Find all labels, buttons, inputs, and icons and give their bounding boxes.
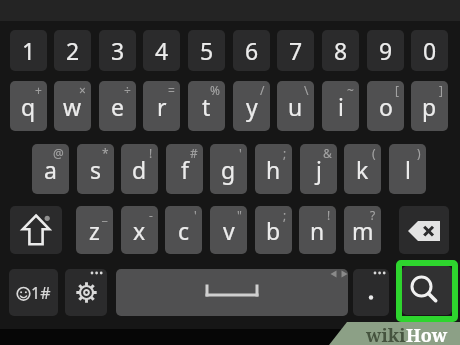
staticText: n	[310, 215, 325, 246]
staticText: /	[260, 82, 265, 98]
button[interactable]: o	[367, 81, 404, 131]
staticText: =	[168, 82, 175, 98]
button[interactable]	[116, 269, 348, 316]
staticText: ÷	[124, 82, 131, 98]
staticText: 1	[22, 35, 36, 66]
button[interactable]: m	[344, 206, 381, 254]
button[interactable]: z	[76, 206, 113, 254]
staticText: g	[221, 154, 236, 185]
staticText: '	[194, 207, 197, 223]
button[interactable]: g	[210, 144, 247, 194]
staticText: !	[149, 145, 153, 161]
staticText: x	[133, 215, 146, 246]
button[interactable]: u	[277, 81, 314, 131]
staticText: i	[338, 91, 344, 122]
button[interactable]: 7	[277, 30, 314, 71]
staticText: l	[405, 154, 411, 185]
button[interactable]: l	[389, 144, 426, 194]
button[interactable]: r	[143, 81, 180, 131]
staticText: y	[246, 91, 258, 122]
staticText: 2	[66, 35, 80, 66]
staticText: 3	[111, 35, 125, 66]
staticText: m	[352, 215, 374, 246]
button[interactable]: k	[344, 144, 381, 194]
button[interactable]: 9	[367, 30, 404, 71]
staticText: c	[178, 215, 190, 246]
staticText: \	[304, 82, 309, 98]
staticText: _	[102, 207, 108, 223]
button[interactable]: 1#	[9, 269, 58, 316]
staticText: ]	[439, 82, 443, 98]
staticText: &	[323, 145, 332, 161]
button[interactable]: v	[210, 206, 247, 254]
staticText: wiki	[366, 323, 406, 345]
staticText: How	[406, 323, 448, 345]
button[interactable]: q	[10, 81, 47, 131]
staticText: w	[63, 91, 82, 122]
staticText: (	[372, 145, 376, 161]
staticText: 9	[379, 35, 393, 66]
button[interactable]: n	[299, 206, 336, 254]
staticText: h	[266, 154, 281, 185]
staticText: q	[21, 91, 36, 122]
button[interactable]: a	[32, 144, 69, 194]
button[interactable]: b	[255, 206, 292, 254]
staticText: 8	[334, 35, 348, 66]
staticText: ×	[79, 82, 86, 98]
staticText: k	[356, 154, 369, 185]
staticText: p	[422, 91, 437, 122]
button[interactable]	[402, 266, 452, 315]
button[interactable]: 2	[54, 30, 91, 71]
button[interactable]: h	[255, 144, 292, 194]
button[interactable]	[10, 206, 62, 254]
staticText: ~	[347, 82, 354, 98]
button[interactable]: e	[99, 81, 136, 131]
button[interactable]: c	[165, 206, 202, 254]
button[interactable]: d	[121, 144, 158, 194]
staticText: ;	[283, 207, 287, 223]
staticText: *	[102, 145, 109, 161]
staticText: r	[157, 91, 167, 122]
staticText: v	[223, 215, 235, 246]
staticText: )	[417, 145, 421, 161]
staticText: 4	[155, 35, 169, 66]
staticText: %	[210, 82, 220, 98]
button[interactable]: 8	[322, 30, 359, 71]
staticText: j	[316, 154, 322, 185]
staticText: 0	[423, 35, 437, 66]
button[interactable]	[353, 269, 389, 316]
button[interactable]: y	[233, 81, 270, 131]
staticText: f	[181, 154, 189, 185]
button[interactable]: 3	[99, 30, 136, 71]
staticText: "	[237, 207, 242, 223]
button[interactable]: s	[77, 144, 114, 194]
staticText: 5	[200, 35, 214, 66]
staticText: 1#	[31, 282, 51, 304]
button[interactable]: 1	[10, 30, 47, 71]
button[interactable]: 0	[411, 30, 448, 71]
button[interactable]: 6	[233, 30, 270, 71]
staticText: +	[35, 82, 42, 98]
button[interactable]	[65, 269, 107, 316]
button[interactable]: x	[121, 206, 158, 254]
staticText: d	[132, 154, 147, 185]
button[interactable]: 4	[143, 30, 180, 71]
staticText: a	[44, 154, 57, 185]
staticText: -	[149, 207, 153, 223]
staticText: s	[90, 154, 102, 185]
staticText: #	[190, 145, 198, 161]
button[interactable]: t	[188, 81, 225, 131]
staticText: 7	[289, 35, 303, 66]
button[interactable]: w	[54, 81, 91, 131]
staticText: ;	[283, 145, 287, 161]
button[interactable]: f	[166, 144, 203, 194]
staticText: ?	[370, 207, 376, 223]
button[interactable]: 5	[188, 30, 225, 71]
staticText: u	[288, 91, 303, 122]
staticText: '	[239, 145, 242, 161]
button[interactable]: i	[322, 81, 359, 131]
button[interactable]: j	[300, 144, 337, 194]
button[interactable]	[399, 206, 449, 254]
button[interactable]: p	[411, 81, 448, 131]
staticText: o	[379, 91, 393, 122]
